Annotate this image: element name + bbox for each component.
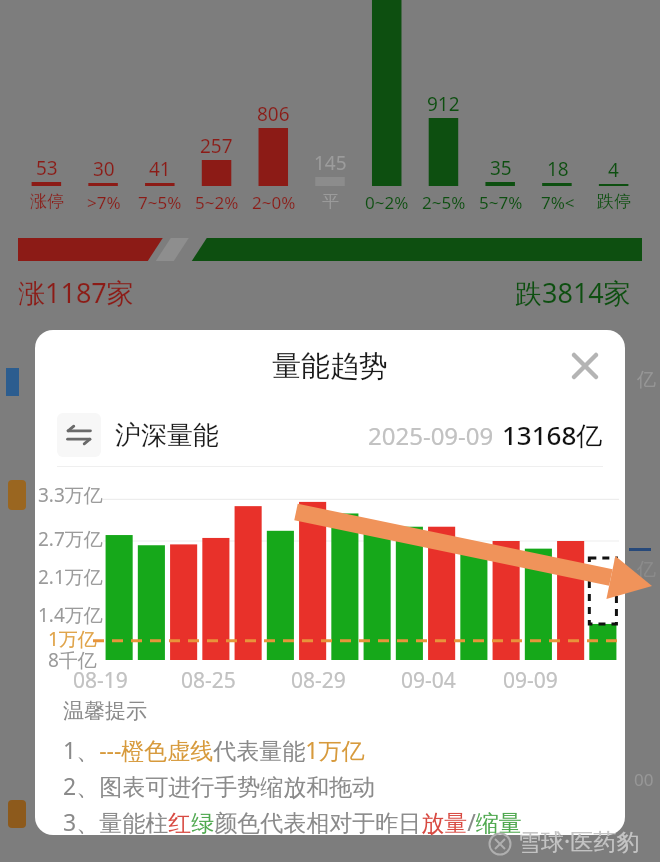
staticText: 5~2% [195,191,239,214]
staticText: 7~5% [138,191,182,214]
staticText: 08-25 [181,666,236,695]
staticText: 1.4万亿 [38,602,103,628]
staticText: 912 [427,91,460,117]
staticText: >7% [87,191,121,214]
staticText: 跌停 [597,191,631,212]
staticText: 1万亿 [48,626,97,652]
staticText: 沪深量能 [115,419,219,452]
staticText: 温馨提示 [63,698,147,724]
staticText: 1、---橙色虚线代表量能1万亿 [63,734,365,765]
staticText: 量能趋势 [272,348,388,385]
staticText: 41 [149,156,171,182]
staticText: 30 [93,156,115,182]
staticText: 2~5% [422,191,466,214]
staticText: 5~7% [479,191,523,214]
button[interactable]: 切换指标 [57,406,603,464]
staticText: 145 [314,150,347,176]
staticText: 亿 [637,368,656,392]
other: 切换指标 [57,413,101,457]
staticText: 2、图表可进行手势缩放和拖动 [63,770,376,801]
staticText: 2.7万亿 [38,526,103,552]
staticText: 4 [608,157,619,183]
staticText: 0~2% [365,191,409,214]
staticText: 09-09 [503,666,558,695]
staticText: 53 [36,155,58,181]
button[interactable]: 关闭 [561,342,609,390]
staticText: 2025-09-09 [368,419,494,452]
staticText: 806 [257,101,290,127]
staticText: 3、量能柱红绿颜色代表相对于昨日放量/缩量 [63,806,522,835]
staticText: 13168亿 [502,417,603,453]
staticText: 2.1万亿 [38,564,103,590]
staticText: 跌3814家 [515,274,631,311]
staticText: 涨1187家 [18,274,134,311]
staticText: 08-19 [73,666,128,695]
staticText: 2~0% [252,191,296,214]
staticText: 雪球·医药豹 [518,825,640,856]
staticText: 8千亿 [48,647,97,673]
staticText: 平 [322,191,339,212]
staticText: 08-29 [291,666,346,695]
staticText: 亿 [637,558,656,582]
staticText: 3.3万亿 [38,482,103,508]
staticText: 7%< [541,191,575,214]
staticText: 00 [634,768,654,791]
staticText: 257 [200,133,233,159]
staticText: 09-04 [401,666,456,695]
staticText: 涨停 [30,191,64,212]
staticText: 35 [490,155,512,181]
staticText: 18 [547,156,569,182]
